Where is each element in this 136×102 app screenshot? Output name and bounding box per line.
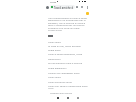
- button[interactable]: [50, 5, 75, 9]
- staticText: Sedie pieghevoli: [48, 66, 67, 69]
- staticText: Tavolini da campeggio mare: [48, 71, 80, 74]
- staticText: Scopri di piu: [48, 28, 62, 31]
- staticText: Tavoli con sedie e ombrellone mare: [48, 84, 88, 87]
- staticText: Tavoli mare: [48, 40, 61, 43]
- staticText: Tavoli mare: [48, 75, 61, 78]
- staticText: Set da giardino mare e amiche: [48, 61, 83, 64]
- staticText: Una combinazione di tavoli e sedie: [48, 16, 87, 19]
- staticText: Altro: [48, 86, 54, 89]
- staticText: Tavoli amiche d: [54, 6, 74, 10]
- button[interactable]: Account: [46, 6, 49, 9]
- staticText: Sedie mare: [48, 48, 61, 51]
- staticText: Visualizza altri risultati: [50, 92, 72, 95]
- staticText: Tavoli alluminio mare: [48, 80, 72, 83]
- staticText: spiaggia, con le amiche al mare e: [48, 21, 86, 24]
- button[interactable]: Back: [57, 97, 59, 99]
- staticText: tutto il necessario per un pranzo: [48, 23, 85, 26]
- staticText: In base ai tuoi, tavoli flessibili: [48, 44, 81, 47]
- staticText: Ombrelloni: [48, 57, 61, 60]
- staticText: all'aperto con vista sul mare.: [48, 26, 80, 29]
- button[interactable]: Tabs: [76, 6, 78, 8]
- staticText: pieghevoli e un ombrellone per la: [48, 18, 86, 21]
- staticText: 10:04: [50, 0, 57, 3]
- staticText: Tavoli e sedie pieghevoli, mare: [48, 52, 83, 55]
